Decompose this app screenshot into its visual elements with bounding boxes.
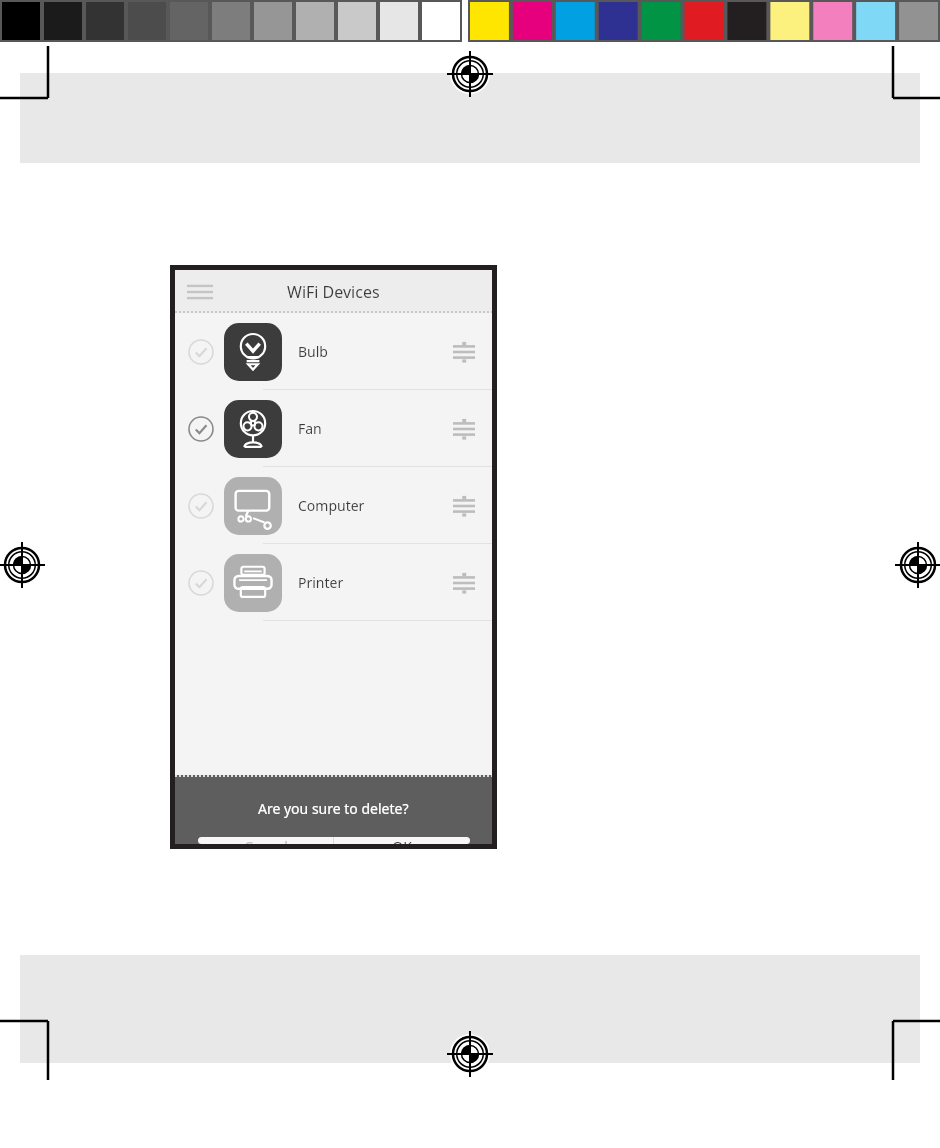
staticText: OK [392,837,412,844]
button[interactable]: Menu [183,277,217,307]
staticText: Computer [298,496,365,515]
button[interactable]: Fan [175,390,492,467]
staticText: Are you sure to delete? [258,799,409,818]
button[interactable]: Computer [175,467,492,544]
button[interactable]: Settings for Printer [447,566,481,600]
button[interactable]: Bulb [175,313,492,390]
staticText: Bulb [298,342,328,361]
button[interactable]: Settings for Computer [447,489,481,523]
staticText: WiFi Devices [287,281,380,303]
button[interactable]: Cancel [198,837,333,844]
button[interactable]: Settings for Fan [447,412,481,446]
staticText: Printer [298,573,344,592]
staticText: Fan [298,419,322,438]
button[interactable]: Printer [175,544,492,621]
button[interactable]: OK [334,837,470,844]
button[interactable]: Settings for Bulb [447,335,481,369]
staticText: Cancel [244,837,288,844]
